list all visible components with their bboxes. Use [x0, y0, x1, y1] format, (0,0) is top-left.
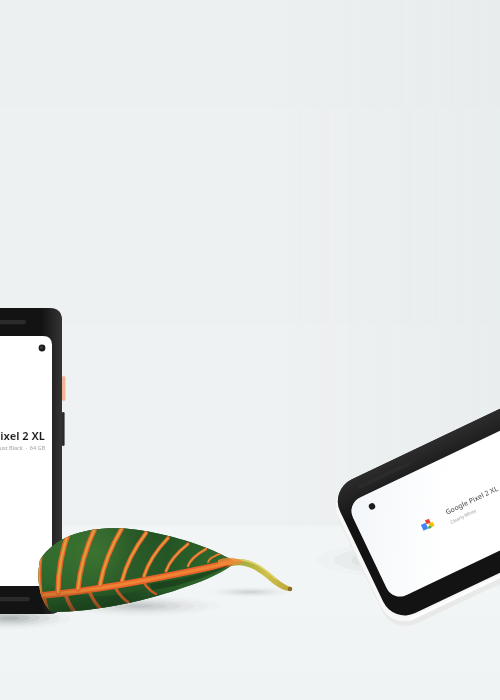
button[interactable]: Google Pixel 2 XL product photo: [0, 0, 500, 700]
